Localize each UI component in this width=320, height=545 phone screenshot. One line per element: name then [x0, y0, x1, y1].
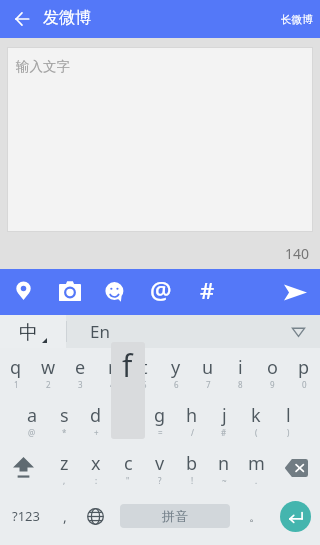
staticText: + [94, 427, 99, 438]
staticText: 1 [14, 379, 19, 390]
button[interactable]: ?123 [0, 492, 52, 540]
staticText: j [222, 403, 227, 428]
staticText: : [95, 475, 98, 486]
staticText: ! [191, 475, 194, 486]
button[interactable]: r [96, 348, 128, 396]
staticText: . [255, 475, 258, 486]
staticText: ) [287, 427, 290, 438]
staticText: z [60, 451, 69, 476]
staticText: v [155, 451, 165, 476]
staticText: 发微博 [43, 8, 91, 28]
staticText: 2 [46, 379, 51, 390]
button[interactable]: l [272, 396, 304, 444]
staticText: q [10, 355, 22, 380]
staticText: / [191, 427, 194, 438]
staticText: i [238, 355, 243, 380]
staticText: f [122, 345, 133, 386]
button[interactable]: k [240, 396, 272, 444]
button[interactable]: s [48, 396, 80, 444]
staticText: @ [28, 427, 36, 438]
staticText: 3 [78, 379, 83, 390]
button[interactable]: y [160, 348, 192, 396]
button[interactable]: v [144, 444, 176, 492]
button[interactable]: Hide keyboard [276, 315, 320, 348]
button[interactable]: c [112, 444, 144, 492]
staticText: t [141, 355, 148, 380]
staticText: b [186, 451, 198, 476]
button[interactable]: Delete [272, 444, 320, 492]
button[interactable]: 中 [0, 315, 66, 348]
staticText: 长微博 [281, 13, 313, 26]
staticText: k [251, 403, 261, 428]
button[interactable]: o [256, 348, 288, 396]
staticText: * [62, 427, 67, 438]
staticText: 7 [206, 379, 211, 390]
staticText: ( [255, 427, 258, 438]
button[interactable]: i [224, 348, 256, 396]
staticText: , [63, 475, 66, 486]
button[interactable]: n [208, 444, 240, 492]
button[interactable]: u [192, 348, 224, 396]
button[interactable]: 拼音 [120, 504, 230, 528]
button[interactable]: 。 [240, 492, 270, 540]
staticText: = [158, 427, 163, 438]
staticText: w [41, 355, 56, 380]
button[interactable]: h [176, 396, 208, 444]
button[interactable]: a [16, 396, 48, 444]
staticText: " [126, 475, 130, 486]
staticText: 6 [174, 379, 179, 390]
staticText: x [91, 451, 101, 476]
staticText: s [60, 403, 69, 428]
button[interactable]: t [128, 348, 160, 396]
button[interactable]: Location [0, 269, 46, 315]
button[interactable]: m [240, 444, 272, 492]
staticText: 中 [19, 321, 38, 345]
button[interactable]: b [176, 444, 208, 492]
staticText: ~ [222, 475, 227, 486]
staticText: c [124, 451, 133, 476]
button[interactable]: Camera [47, 269, 93, 315]
staticText: m [248, 451, 265, 476]
staticText: r [108, 355, 116, 380]
button[interactable]: 长微博 [274, 5, 320, 34]
button[interactable]: Emoji [92, 269, 138, 315]
staticText: , [63, 507, 67, 526]
button[interactable]: Back [7, 0, 37, 38]
staticText: p [298, 355, 310, 380]
staticText: 输入文字 [16, 58, 70, 75]
button[interactable]: w [32, 348, 64, 396]
button[interactable]: Enter [280, 501, 311, 532]
staticText: 。 [249, 509, 261, 524]
button[interactable]: f [112, 396, 144, 444]
staticText: h [186, 403, 198, 428]
button[interactable]: p [288, 348, 320, 396]
staticText: a [27, 403, 38, 428]
staticText: 拼音 [162, 508, 188, 524]
staticText: o [267, 355, 278, 380]
staticText: 0 [302, 379, 307, 390]
button[interactable]: z [48, 444, 80, 492]
button[interactable]: q [0, 348, 32, 396]
button[interactable]: j [208, 396, 240, 444]
staticText: ?123 [12, 507, 40, 525]
button[interactable]: g [144, 396, 176, 444]
button[interactable]: Change language [78, 492, 112, 540]
staticText: 140 [260, 244, 309, 263]
staticText: 9 [270, 379, 275, 390]
button[interactable]: Shift [0, 444, 48, 492]
button[interactable]: e [64, 348, 96, 396]
staticText: @ [150, 273, 172, 306]
button[interactable]: Send [272, 269, 319, 315]
button[interactable]: Topic [185, 269, 230, 315]
button[interactable]: Mention [138, 269, 183, 315]
button[interactable]: d [80, 396, 112, 444]
button[interactable]: x [80, 444, 112, 492]
staticText: En [90, 320, 110, 343]
button[interactable]: , [52, 492, 78, 540]
staticText: ? [158, 475, 162, 486]
staticText: n [218, 451, 230, 476]
staticText: y [171, 355, 181, 380]
staticText: e [75, 355, 86, 380]
